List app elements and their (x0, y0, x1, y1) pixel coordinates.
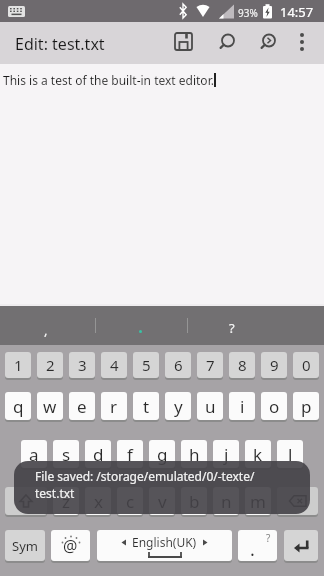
staticText: q (13, 395, 24, 418)
button[interactable] (244, 22, 284, 64)
button[interactable]: y (165, 392, 191, 420)
button[interactable]: 7 (197, 352, 223, 378)
button[interactable]: 8 (229, 352, 255, 378)
staticText: 4 (110, 355, 119, 375)
button[interactable]: 2 (37, 352, 63, 378)
staticText: p (301, 395, 312, 418)
button[interactable] (277, 487, 318, 515)
staticText: 9 (270, 355, 279, 375)
button[interactable]: s (53, 440, 79, 468)
button[interactable]: m (245, 487, 271, 515)
staticText: g (157, 443, 168, 466)
button[interactable]: u (197, 392, 223, 420)
staticText: h (189, 443, 200, 466)
button[interactable]: 3 (69, 352, 95, 378)
staticText: w (43, 395, 57, 418)
staticText: e (77, 395, 87, 418)
staticText: r (110, 395, 118, 418)
button[interactable]: 6 (165, 352, 191, 378)
staticText: 7 (206, 355, 215, 375)
button[interactable]: Sym (5, 530, 45, 561)
staticText: File saved: /storage/emulated/0/-texte/ (35, 468, 255, 484)
button[interactable]: g (149, 440, 175, 468)
button[interactable]: z (53, 487, 79, 515)
staticText: . (250, 537, 255, 561)
button[interactable] (284, 530, 318, 561)
staticText: x (94, 490, 103, 513)
staticText: Edit: test.txt (15, 33, 105, 55)
button[interactable]: a (21, 440, 47, 468)
button[interactable]: i (229, 392, 255, 420)
button[interactable]: p (293, 392, 319, 420)
staticText: k (253, 443, 263, 466)
button[interactable]: o (261, 392, 287, 420)
button[interactable] (5, 487, 47, 515)
staticText: b (189, 490, 200, 513)
staticText: n (221, 490, 232, 513)
staticText: v (158, 490, 167, 513)
staticText: z (62, 490, 70, 513)
button[interactable]: n (213, 487, 239, 515)
button[interactable]: 0 (293, 352, 319, 378)
button[interactable]: q (5, 392, 31, 420)
staticText: 0 (302, 355, 311, 375)
button[interactable]: 1 (5, 352, 31, 378)
button[interactable]: File saved: /storage/emulated/0/-texte/ (14, 461, 310, 514)
staticText: s (62, 443, 71, 466)
staticText: 6 (174, 355, 183, 375)
button[interactable]: 5 (133, 352, 159, 378)
staticText: i (240, 395, 245, 418)
button[interactable]: 4 (101, 352, 127, 378)
staticText: , (44, 321, 48, 339)
staticText: 2 (46, 355, 55, 375)
staticText: 3 (78, 355, 87, 375)
staticText: a (29, 443, 39, 466)
staticText: d (93, 443, 104, 466)
button[interactable]: c (117, 487, 143, 515)
staticText: c (126, 490, 135, 513)
button[interactable] (284, 22, 324, 64)
button[interactable]: t (133, 392, 159, 420)
staticText: y (174, 395, 183, 418)
staticText: This is a test of the built-in text edit… (3, 72, 214, 88)
staticText: English(UK) (132, 534, 197, 550)
button[interactable]: English(UK) (97, 530, 232, 561)
staticText: Sym (12, 537, 38, 555)
button[interactable]: b (181, 487, 207, 515)
button[interactable]: r (101, 392, 127, 420)
button[interactable]: v (149, 487, 175, 515)
staticText: 8 (238, 355, 247, 375)
staticText: t (143, 395, 150, 418)
button[interactable]: h (181, 440, 207, 468)
button[interactable] (108, 306, 216, 345)
button[interactable] (164, 22, 204, 64)
staticText: j (224, 443, 229, 466)
staticText: @ (63, 535, 78, 557)
button[interactable]: f (117, 440, 143, 468)
staticText: 1 (14, 355, 23, 375)
staticText: 14:57 (280, 3, 314, 21)
button[interactable]: k (245, 440, 271, 468)
staticText: 93% (238, 6, 258, 20)
button[interactable]: l (277, 440, 303, 468)
button[interactable] (204, 22, 244, 64)
staticText: l (288, 443, 293, 466)
staticText: ? (229, 319, 235, 337)
staticText: f (127, 443, 133, 466)
staticText: u (205, 395, 216, 418)
button[interactable]: . (238, 530, 277, 561)
staticText: ? (266, 531, 271, 545)
button[interactable]: e (69, 392, 95, 420)
staticText: 5 (142, 355, 151, 375)
button[interactable] (0, 306, 108, 345)
button[interactable] (216, 306, 324, 345)
button[interactable]: @ (51, 530, 90, 561)
staticText: o (269, 395, 280, 418)
button[interactable]: j (213, 440, 239, 468)
staticText: m (250, 490, 266, 513)
button[interactable]: w (37, 392, 63, 420)
staticText: test.txt (35, 485, 75, 501)
button[interactable]: 9 (261, 352, 287, 378)
button[interactable]: x (85, 487, 111, 515)
button[interactable]: d (85, 440, 111, 468)
